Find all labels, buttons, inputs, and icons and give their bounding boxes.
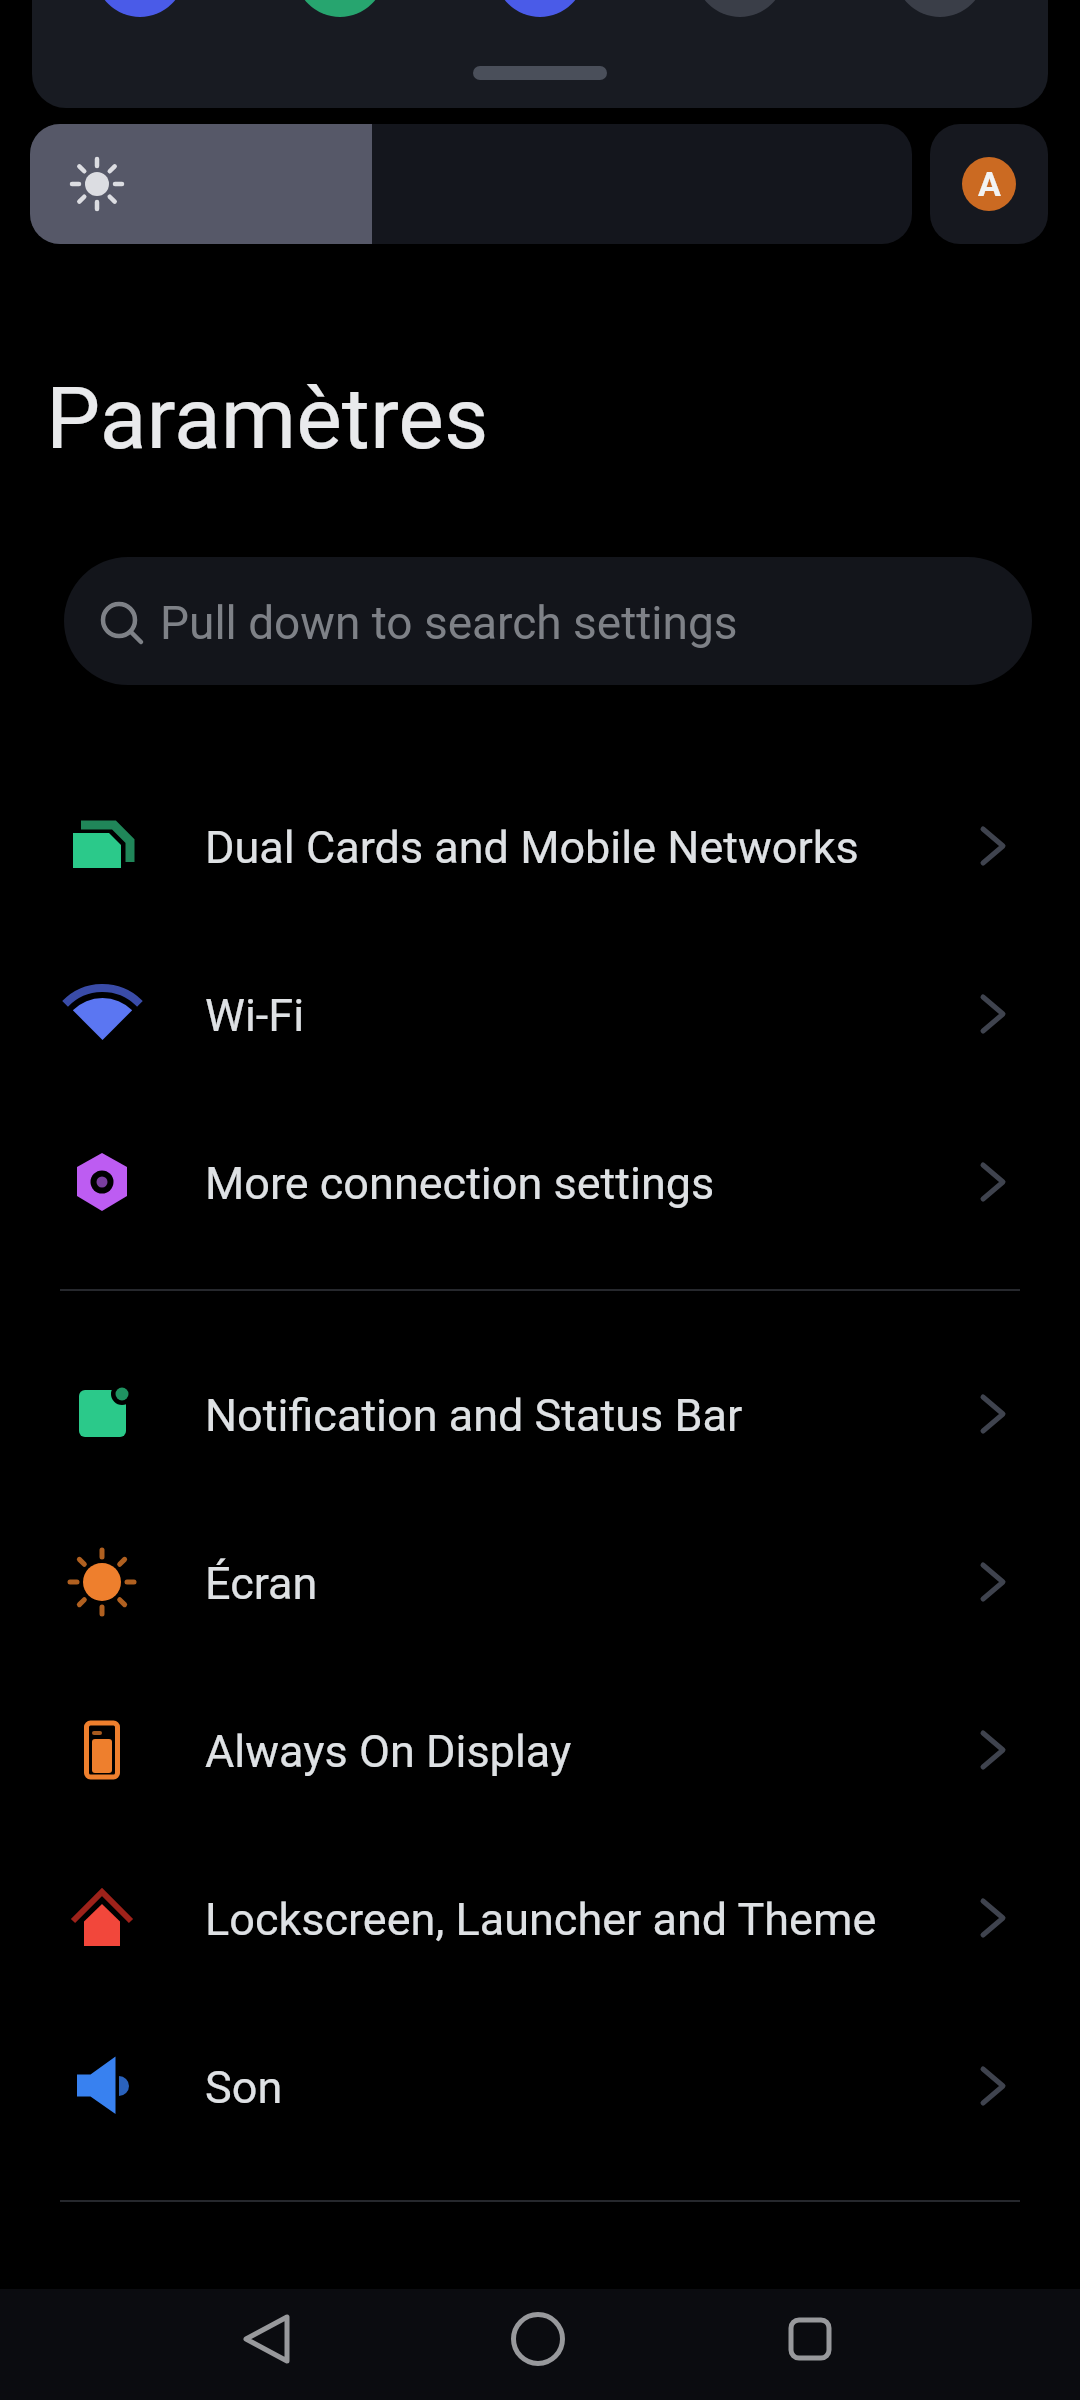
button[interactable]: Écran — [0, 1498, 1080, 1666]
button[interactable]: Always On Display — [0, 1666, 1080, 1834]
button[interactable] — [0, 2289, 360, 2400]
button[interactable] — [720, 2289, 1080, 2400]
button[interactable]: Lockscreen, Launcher and Theme — [0, 1834, 1080, 2002]
staticText: Son — [205, 2061, 283, 2114]
button[interactable] — [30, 124, 912, 244]
staticText: Écran — [205, 1557, 318, 1610]
button[interactable]: More connection settings — [0, 1098, 1080, 1266]
staticText: Wi-Fi — [205, 989, 305, 1042]
button[interactable]: Dual Cards and Mobile Networks — [0, 762, 1080, 930]
staticText: Paramètres — [46, 368, 489, 469]
staticText: Notification and Status Bar — [205, 1389, 743, 1442]
button[interactable]: A — [930, 124, 1048, 244]
staticText: Pull down to search settings — [160, 596, 738, 650]
staticText: Dual Cards and Mobile Networks — [205, 821, 859, 874]
button[interactable]: Notification and Status Bar — [0, 1330, 1080, 1498]
button[interactable]: Pull down to search settings — [64, 557, 1032, 685]
button[interactable]: Wi-Fi — [0, 930, 1080, 1098]
button[interactable]: Son — [0, 2002, 1080, 2170]
staticText: A — [978, 164, 1001, 204]
button[interactable] — [360, 2289, 720, 2400]
staticText: Always On Display — [205, 1725, 572, 1778]
staticText: More connection settings — [205, 1157, 715, 1210]
staticText: Lockscreen, Launcher and Theme — [205, 1893, 877, 1946]
